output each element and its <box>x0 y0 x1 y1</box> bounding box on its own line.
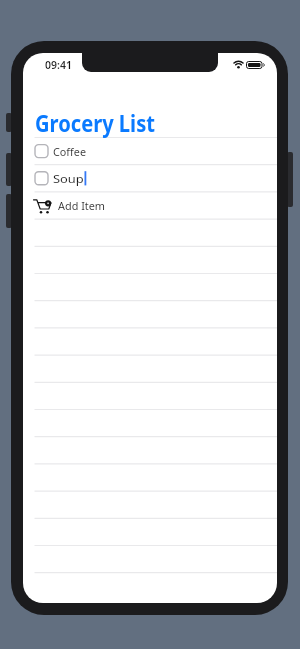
staticText: Coffee <box>53 144 87 160</box>
button[interactable]: Add Item <box>23 192 277 219</box>
button[interactable]: Soup <box>23 165 277 192</box>
button[interactable]: Coffee <box>23 138 277 165</box>
staticText: Soup <box>53 171 84 187</box>
staticText: 09:41 <box>45 58 72 72</box>
staticText: Add Item <box>58 198 105 214</box>
staticText: Grocery List <box>35 107 156 138</box>
